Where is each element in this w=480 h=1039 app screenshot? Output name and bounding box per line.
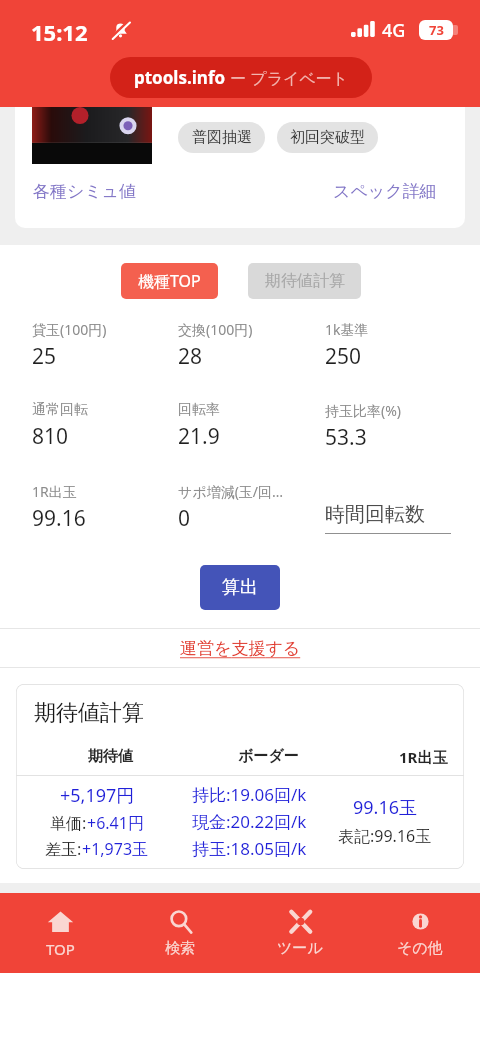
- staticText: 73: [429, 21, 444, 39]
- button[interactable]: 1R出玉: [32, 482, 160, 538]
- staticText: 99.16: [32, 504, 86, 533]
- staticText: 単価:: [50, 812, 87, 834]
- staticText: 1k基準: [325, 320, 369, 339]
- staticText: サポ増減(玉/回…: [178, 482, 284, 501]
- button[interactable]: 持玉比率(%): [325, 401, 453, 457]
- staticText: 差玉:: [45, 838, 82, 860]
- staticText: 交換(100円): [178, 320, 253, 339]
- staticText: +5,197円: [60, 783, 135, 808]
- staticText: 普図抽選: [192, 128, 252, 147]
- button[interactable]: 検索: [120, 893, 240, 973]
- staticText: 持比:19.06回/k: [192, 783, 307, 806]
- button[interactable]: 回転率: [178, 401, 306, 457]
- staticText: 250: [325, 342, 362, 371]
- staticText: 時間回転数: [325, 502, 425, 527]
- staticText: 持玉:18.05回/k: [192, 837, 307, 860]
- button[interactable]: 初回突破型: [277, 122, 378, 153]
- button[interactable]: スペック詳細: [327, 175, 443, 208]
- button[interactable]: 通常回転: [32, 401, 160, 457]
- staticText: 99.16玉: [353, 795, 418, 820]
- staticText: 機種TOP: [138, 270, 201, 292]
- staticText: ツール: [277, 939, 323, 958]
- staticText: 期待値計算: [265, 271, 345, 291]
- staticText: 通常回転: [32, 401, 88, 419]
- staticText: 持玉比率(%): [325, 401, 402, 420]
- staticText: 810: [32, 422, 69, 451]
- button[interactable]: 運営を支援する: [0, 629, 480, 667]
- staticText: 25: [32, 342, 57, 371]
- button[interactable]: 交換(100円): [178, 320, 306, 376]
- staticText: 1R出玉: [32, 482, 77, 501]
- staticText: 運営を支援する: [180, 638, 301, 659]
- staticText: 貸玉(100円): [32, 320, 107, 339]
- staticText: その他: [397, 939, 443, 958]
- staticText: 期待値計算: [34, 699, 144, 727]
- staticText: 表記:99.16玉: [338, 825, 432, 847]
- staticText: 初回突破型: [290, 128, 365, 147]
- button[interactable]: 算出: [200, 565, 280, 610]
- staticText: ボーダー: [238, 747, 299, 766]
- staticText: スペック詳細: [333, 181, 437, 202]
- staticText: 4G: [382, 18, 406, 43]
- staticText: TOP: [46, 939, 75, 959]
- button[interactable]: 時間回転数: [325, 482, 453, 534]
- button[interactable]: 期待値計算: [248, 263, 361, 299]
- staticText: 0: [178, 504, 191, 533]
- button[interactable]: 貸玉(100円): [32, 320, 160, 376]
- button[interactable]: TOP: [0, 893, 120, 973]
- staticText: 21.9: [178, 422, 220, 451]
- staticText: ー プライベート: [226, 67, 349, 89]
- button[interactable]: 普図抽選: [178, 122, 265, 153]
- staticText: 15:12: [31, 17, 88, 47]
- staticText: ptools.info: [134, 66, 226, 89]
- button[interactable]: その他: [360, 893, 480, 973]
- button[interactable]: サポ増減(玉/回…: [178, 482, 306, 538]
- staticText: 1R出玉: [399, 747, 448, 767]
- staticText: 各種シミュ値: [33, 181, 137, 202]
- staticText: 53.3: [325, 423, 367, 452]
- staticText: 期待値: [88, 747, 133, 766]
- staticText: 現金:20.22回/k: [192, 810, 307, 833]
- staticText: 算出: [222, 576, 258, 599]
- button[interactable]: 機種TOP: [121, 263, 218, 299]
- staticText: +6.41円: [87, 812, 144, 834]
- staticText: 検索: [165, 939, 195, 958]
- staticText: 28: [178, 342, 203, 371]
- button[interactable]: 各種シミュ値: [27, 175, 143, 208]
- button[interactable]: 1k基準: [325, 320, 453, 376]
- button[interactable]: ツール: [240, 893, 360, 973]
- staticText: 回転率: [178, 401, 220, 419]
- staticText: +1,973玉: [82, 838, 149, 860]
- button[interactable]: ptools.info: [110, 57, 372, 98]
